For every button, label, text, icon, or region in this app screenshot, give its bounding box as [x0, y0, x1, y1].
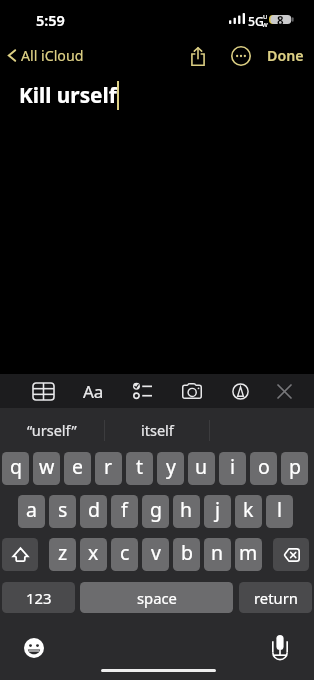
- button[interactable]: itself: [105, 408, 209, 452]
- button[interactable]: c: [111, 538, 138, 571]
- staticText: d: [88, 496, 100, 523]
- button[interactable]: n: [204, 538, 231, 571]
- button[interactable]: All iCloud: [4, 43, 92, 68]
- staticText: j: [215, 496, 221, 523]
- button[interactable]: s: [49, 495, 76, 528]
- staticText: q: [10, 453, 22, 480]
- button[interactable]: Checklist: [125, 374, 159, 408]
- button[interactable]: Close keyboard: [267, 374, 301, 408]
- button[interactable]: Done: [262, 42, 309, 69]
- staticText: h: [180, 496, 193, 523]
- button[interactable]: r: [95, 452, 122, 485]
- button[interactable]: i: [219, 452, 246, 485]
- button[interactable]: e: [64, 452, 91, 485]
- button[interactable]: x: [80, 538, 107, 571]
- button[interactable]: d: [80, 495, 107, 528]
- staticText: v: [151, 539, 161, 566]
- staticText: Kill urself: [19, 81, 117, 109]
- staticText: z: [58, 539, 68, 566]
- button[interactable]: More: [226, 41, 256, 71]
- staticText: space: [137, 588, 177, 608]
- staticText: 123: [26, 588, 52, 608]
- staticText: k: [243, 496, 254, 523]
- button[interactable]: Camera: [175, 374, 209, 408]
- button[interactable]: h: [173, 495, 200, 528]
- staticText: e: [72, 453, 83, 480]
- button[interactable]: Shift: [2, 538, 38, 571]
- staticText: All iCloud: [21, 46, 84, 65]
- button[interactable]: m: [235, 538, 262, 571]
- staticText: Aa: [83, 380, 104, 403]
- staticText: w: [39, 453, 55, 480]
- staticText: l: [277, 496, 283, 523]
- staticText: u: [195, 453, 208, 480]
- button[interactable]: f: [111, 495, 138, 528]
- staticText: t: [136, 453, 144, 480]
- button[interactable]: 123: [2, 582, 75, 613]
- staticText: 8: [277, 13, 284, 29]
- button[interactable]: Share: [183, 41, 213, 71]
- button[interactable]: q: [2, 452, 29, 485]
- staticText: W: [262, 21, 268, 29]
- button[interactable]: w: [33, 452, 60, 485]
- button[interactable]: j: [204, 495, 231, 528]
- button[interactable]: a: [18, 495, 45, 528]
- button[interactable]: y: [157, 452, 184, 485]
- button[interactable]: Backspace: [273, 538, 309, 571]
- staticText: c: [120, 539, 130, 566]
- button[interactable]: g: [142, 495, 169, 528]
- button[interactable]: Format: [76, 374, 110, 408]
- button[interactable]: return: [239, 582, 312, 613]
- staticText: m: [239, 539, 258, 566]
- button[interactable]: o: [250, 452, 277, 485]
- staticText: n: [211, 539, 224, 566]
- staticText: 5G: [248, 13, 264, 30]
- staticText: a: [26, 496, 37, 523]
- button[interactable]: Dictation: [264, 630, 295, 661]
- staticText: y: [166, 453, 176, 480]
- button[interactable]: u: [188, 452, 215, 485]
- staticText: o: [258, 453, 270, 480]
- staticText: Done: [267, 46, 304, 65]
- staticText: U: [263, 13, 268, 21]
- button[interactable]: space: [80, 582, 233, 613]
- button[interactable]: v: [142, 538, 169, 571]
- staticText: 5:59: [36, 10, 65, 30]
- button[interactable]: Markup: [223, 374, 257, 408]
- button[interactable]: “urself”: [0, 408, 104, 452]
- button[interactable]: Table: [26, 374, 60, 408]
- button[interactable]: t: [126, 452, 153, 485]
- button[interactable]: Emoji: [20, 634, 48, 662]
- staticText: f: [121, 496, 128, 523]
- button[interactable]: l: [266, 495, 293, 528]
- button[interactable]: p: [281, 452, 308, 485]
- button[interactable]: z: [49, 538, 76, 571]
- staticText: itself: [141, 420, 174, 440]
- staticText: i: [230, 453, 236, 480]
- staticText: b: [181, 539, 193, 566]
- staticText: g: [150, 496, 162, 523]
- button[interactable]: b: [173, 538, 200, 571]
- staticText: p: [289, 453, 301, 480]
- button[interactable]: k: [235, 495, 262, 528]
- staticText: x: [88, 539, 99, 566]
- staticText: s: [58, 496, 68, 523]
- staticText: return: [254, 588, 298, 608]
- staticText: “urself”: [27, 420, 77, 440]
- staticText: r: [104, 453, 113, 480]
